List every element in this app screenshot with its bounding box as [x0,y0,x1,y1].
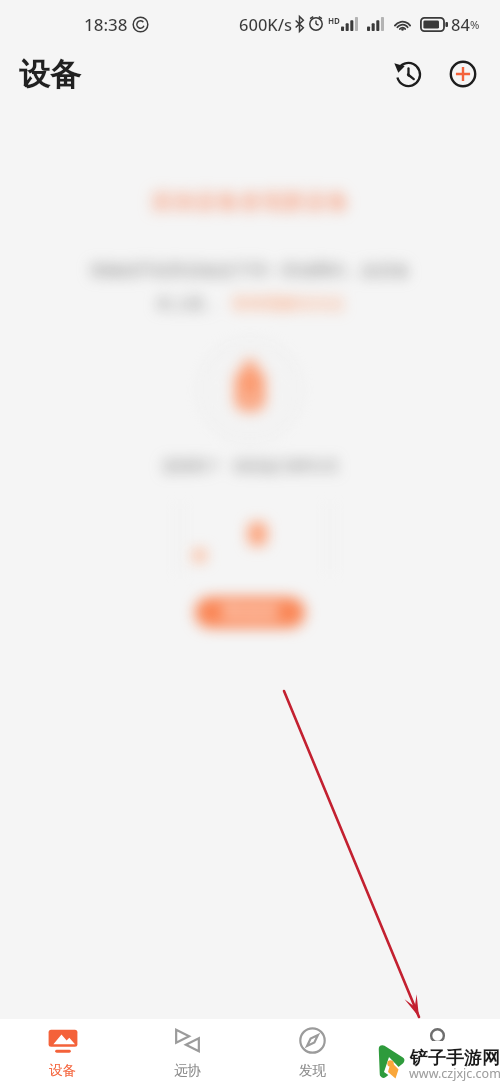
staticText: www.czjxjc.com [409,1065,500,1082]
button[interactable]: 重新搜索 [195,597,305,628]
staticText: 请查看解决办法 [232,294,344,314]
staticText: 添加设备发现新设备 [151,188,349,216]
staticText: 600K/s [239,13,293,35]
button[interactable]: 远协 [125,1019,250,1084]
button[interactable]: Add device [441,52,485,96]
staticText: 请确保手机和设备处于同一局域网内，如设备 [90,261,410,281]
button[interactable]: 我的 [375,1019,500,1084]
button[interactable]: 发现 [250,1019,375,1084]
staticText: 未上线， [156,294,220,314]
staticText: 远协 [174,1062,201,1079]
staticText: 设备 [49,1062,76,1079]
staticText: 发现 [299,1062,326,1079]
staticText: 设备 [19,55,81,94]
staticText: 我的 [424,1062,451,1079]
staticText: 铲子手游网 [410,1047,500,1070]
staticText: 试试这几种方式 [233,457,338,476]
button[interactable]: History [386,52,430,96]
staticText: 18:38 [84,13,128,36]
staticText: 重新搜索 [222,604,278,622]
button[interactable]: 设备 [0,1019,125,1084]
staticText: % [470,17,480,32]
staticText: 没找到？ [162,457,222,476]
staticText: HD [328,15,340,26]
staticText: 84 [451,13,470,35]
